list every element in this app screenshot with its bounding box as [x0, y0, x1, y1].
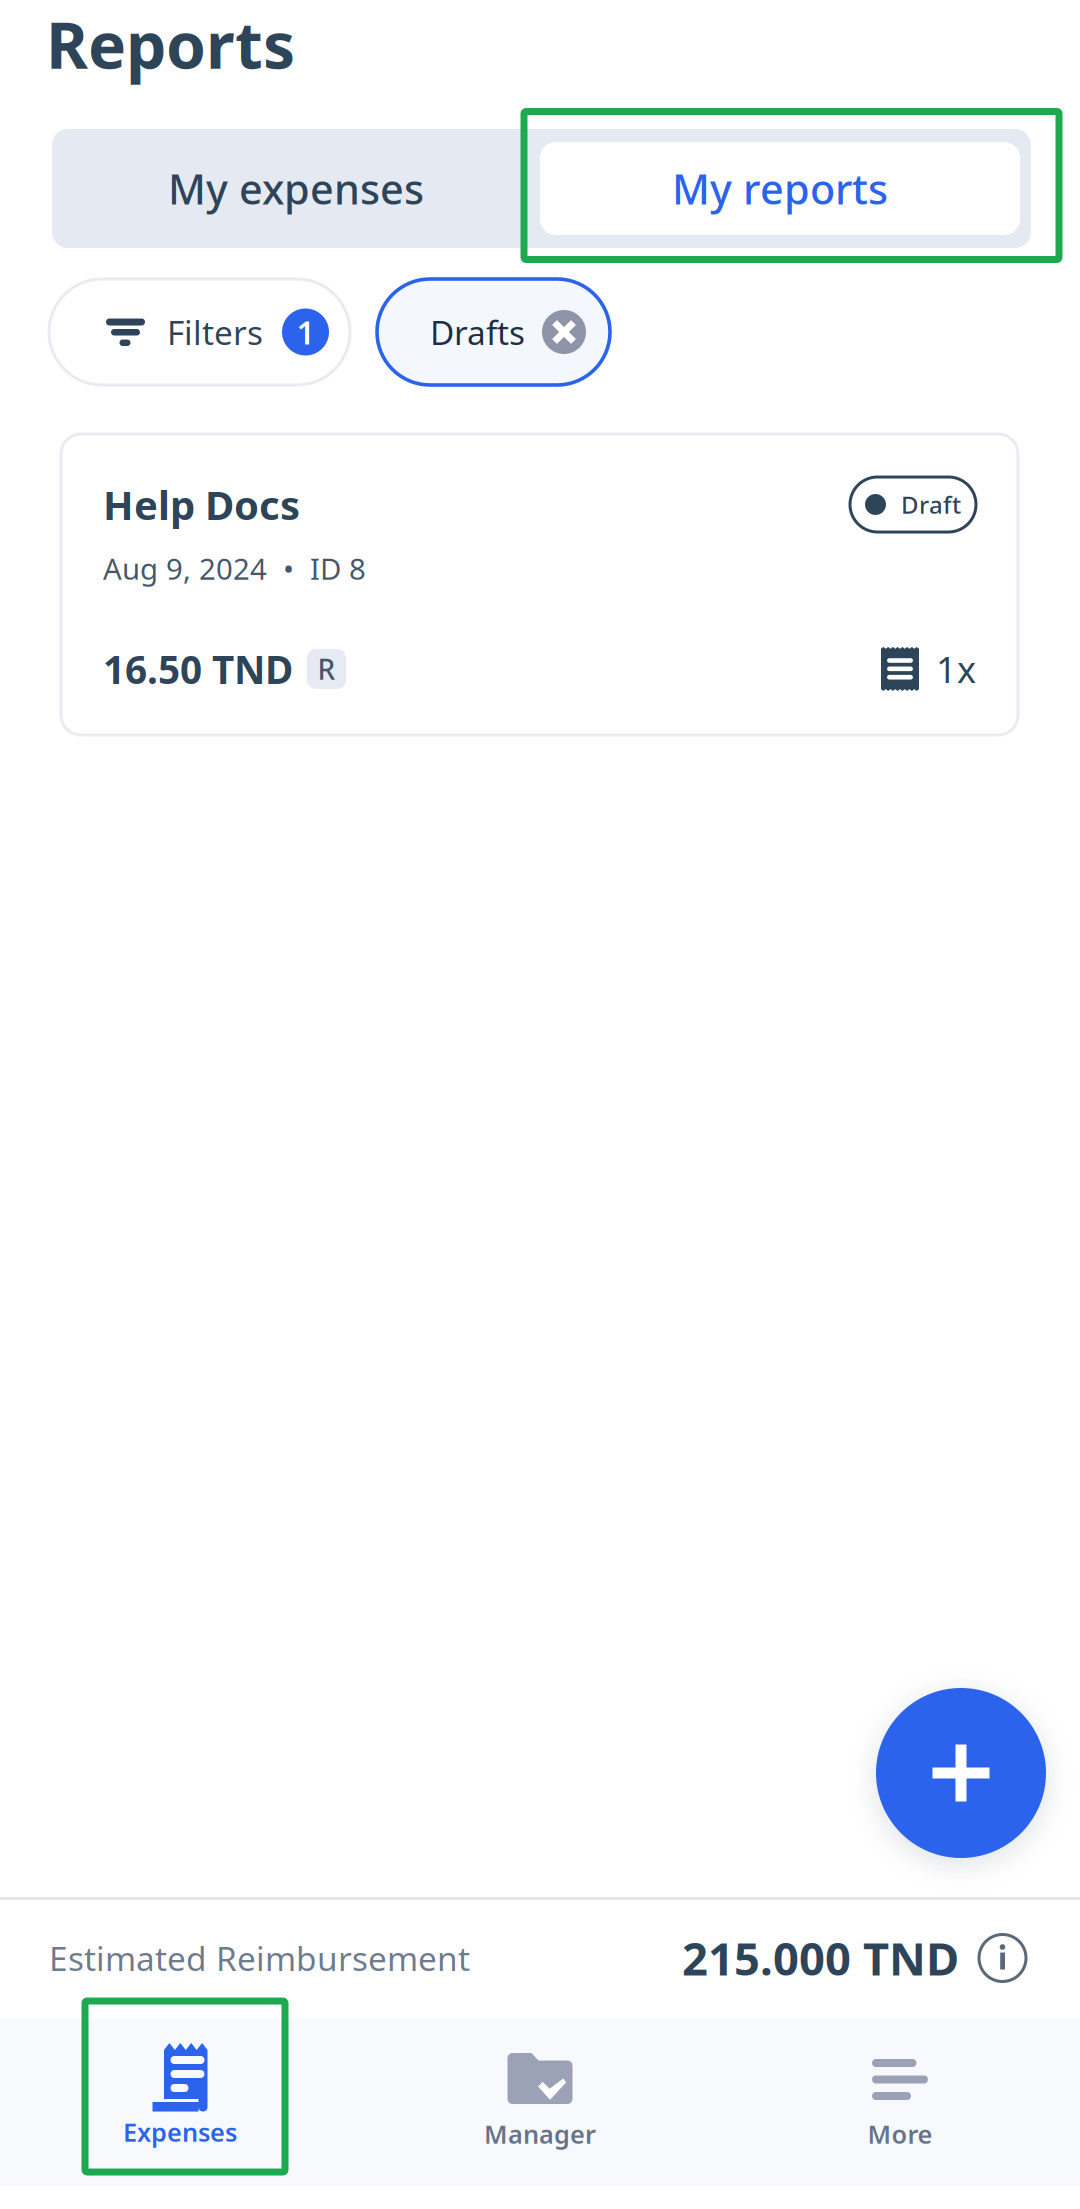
- button[interactable]: Filters: [49, 279, 350, 385]
- button[interactable]: Manager: [360, 2019, 720, 2186]
- staticText: My reports: [672, 161, 888, 216]
- button[interactable]: More: [720, 2019, 1080, 2186]
- staticText: 215.000 TND: [682, 1928, 959, 1988]
- staticText: Drafts: [430, 310, 525, 354]
- staticText: Filters: [167, 310, 263, 354]
- staticText: My expenses: [168, 161, 424, 216]
- button[interactable]: Expenses: [0, 2019, 360, 2186]
- button[interactable]: My reports: [540, 129, 1031, 248]
- staticText: Estimated Reimbursement: [49, 1936, 470, 1980]
- staticText: Aug 9, 2024 • ID 8: [103, 549, 366, 588]
- staticText: Reports: [46, 1, 295, 86]
- button[interactable]: Reimbursement info: [979, 1934, 1026, 1981]
- button[interactable]: Help Docs: [61, 434, 1018, 735]
- button[interactable]: Drafts: [377, 279, 610, 385]
- staticText: R: [317, 650, 335, 688]
- staticText: Manager: [484, 2117, 596, 2151]
- staticText: Draft: [901, 489, 961, 520]
- staticText: 16.50 TND: [103, 643, 293, 695]
- staticText: 1x: [936, 645, 976, 693]
- staticText: Expenses: [123, 2115, 237, 2149]
- staticText: 1: [296, 311, 314, 353]
- staticText: More: [867, 2117, 932, 2151]
- staticText: Help Docs: [103, 478, 300, 531]
- button[interactable]: My expenses: [52, 129, 540, 248]
- button[interactable]: Add: [876, 1688, 1046, 1858]
